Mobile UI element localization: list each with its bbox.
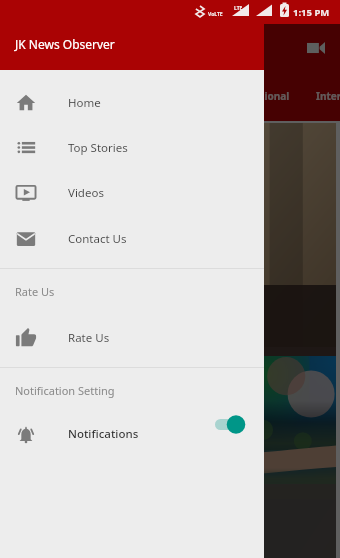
button[interactable]: Notifications	[0, 411, 264, 456]
button[interactable]: Police arrested suspect unable to reach …	[4, 356, 336, 558]
button[interactable]: Top Stories	[0, 125, 264, 170]
button[interactable]: Tea prices climb to 600	[4, 123, 336, 347]
staticText: Rate Us	[15, 284, 55, 299]
staticText: LTE	[234, 5, 243, 12]
staticText: 1:15 PM	[293, 6, 330, 19]
staticText: National	[246, 89, 290, 103]
button[interactable]: Home	[0, 80, 264, 125]
button[interactable]: Notifications toggle	[212, 412, 250, 437]
button[interactable]: National	[246, 71, 290, 121]
staticText: Videos	[68, 185, 104, 201]
staticText: Contact Us	[68, 231, 127, 247]
button[interactable]: Contact Us	[0, 216, 264, 261]
button[interactable]: Rate Us	[0, 315, 264, 360]
staticText: International	[316, 89, 340, 103]
staticText: Home	[68, 95, 101, 111]
button[interactable]: International	[316, 71, 340, 121]
staticText: Notifications	[68, 426, 139, 442]
staticText: Notification Setting	[15, 383, 115, 398]
button[interactable]: Video	[307, 42, 325, 54]
staticText: JK News Observer	[15, 36, 115, 52]
staticText: VoLTE	[208, 11, 223, 18]
button[interactable]: Videos	[0, 170, 264, 215]
staticText: Rate Us	[68, 330, 110, 346]
staticText: Tea prices climb to 600	[12, 321, 181, 341]
staticText: Top Stories	[68, 140, 128, 156]
